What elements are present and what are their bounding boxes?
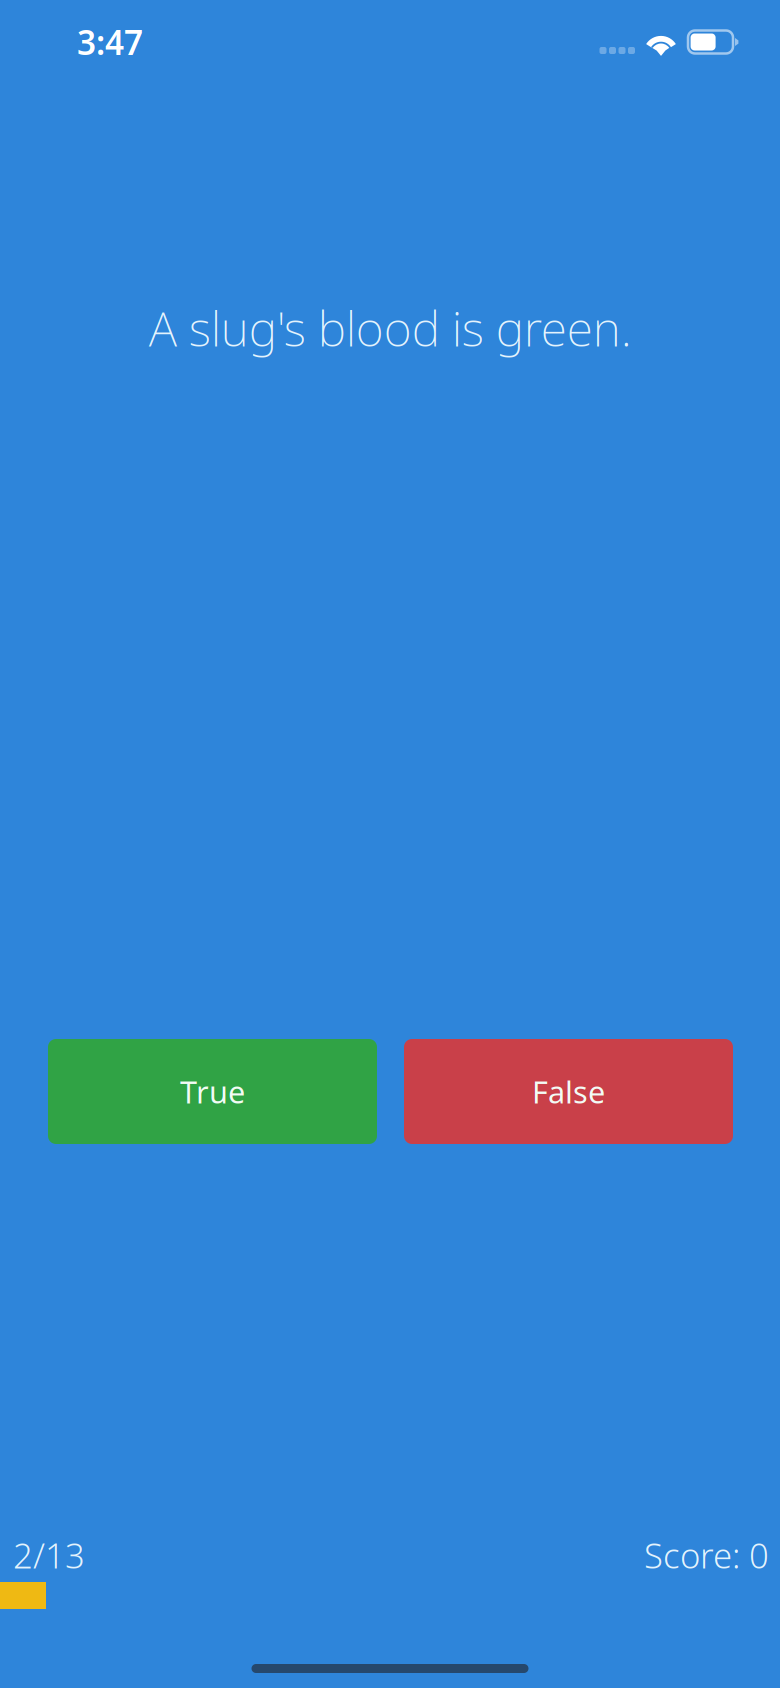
button[interactable]: False (404, 1039, 733, 1144)
staticText: 3:47 (77, 20, 143, 64)
staticText: A slug's blood is green. (148, 296, 631, 360)
staticText: False (532, 1071, 605, 1112)
button[interactable]: True (48, 1039, 377, 1144)
staticText: 2/13 (13, 1532, 85, 1578)
staticText: Score: 0 (644, 1532, 769, 1578)
staticText: True (180, 1071, 245, 1112)
